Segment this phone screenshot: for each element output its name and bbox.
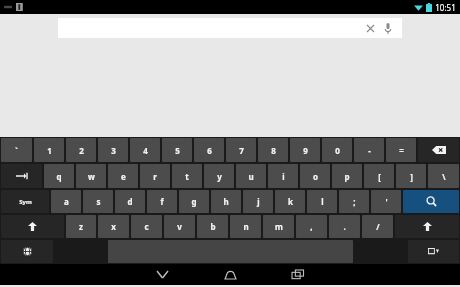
button[interactable]: j <box>243 190 273 213</box>
button[interactable]: \ <box>428 164 459 188</box>
staticText: - <box>368 145 371 156</box>
button[interactable]: h <box>211 190 241 213</box>
staticText: ] <box>410 171 413 182</box>
staticText: . <box>343 221 346 232</box>
button[interactable]: w <box>76 164 106 188</box>
button[interactable]: a <box>51 190 81 213</box>
staticText: r <box>153 171 157 182</box>
button[interactable]: g <box>179 190 209 213</box>
staticText: c <box>144 221 149 232</box>
button[interactable]: 6 <box>194 138 224 162</box>
button[interactable]: Clear search <box>362 20 378 36</box>
staticText: 7 <box>239 145 244 156</box>
button[interactable]: , <box>296 215 327 238</box>
button[interactable]: e <box>108 164 138 188</box>
staticText: 1 <box>47 145 52 156</box>
button[interactable]: - <box>354 138 384 162</box>
staticText: t <box>185 171 189 182</box>
staticText: s <box>96 196 101 207</box>
button[interactable]: u <box>236 164 266 188</box>
staticText: b <box>210 221 216 232</box>
button[interactable]: z <box>66 215 96 238</box>
staticText: 0 <box>335 145 340 156</box>
button[interactable]: s <box>83 190 113 213</box>
staticText: e <box>121 171 126 182</box>
staticText: / <box>376 221 380 232</box>
staticText: ` <box>15 145 18 156</box>
button[interactable]: Voice search <box>380 20 396 36</box>
button[interactable]: ] <box>396 164 426 188</box>
button[interactable]: d <box>115 190 145 213</box>
button[interactable]: Shift <box>395 215 459 238</box>
button[interactable]: 9 <box>290 138 320 162</box>
button[interactable]: 1 <box>34 138 64 162</box>
staticText: 5 <box>175 145 180 156</box>
button[interactable]: y <box>204 164 234 188</box>
staticText: n <box>243 221 249 232</box>
staticText: 3 <box>111 145 116 156</box>
button[interactable]: Tab <box>1 164 42 188</box>
staticText: 10:51 <box>435 2 456 13</box>
button[interactable]: i <box>268 164 298 188</box>
button[interactable]: l <box>307 190 337 213</box>
staticText: l <box>321 196 324 207</box>
button[interactable]: n <box>230 215 261 238</box>
staticText: p <box>344 171 350 182</box>
staticText: m <box>275 221 283 232</box>
staticText: q <box>56 171 62 182</box>
button[interactable]: q <box>44 164 74 188</box>
button[interactable]: 2 <box>66 138 96 162</box>
button[interactable]: ; <box>339 190 369 213</box>
staticText: , <box>310 221 313 232</box>
button[interactable]: Sym <box>1 190 49 213</box>
staticText: [ <box>378 171 381 182</box>
button[interactable]: ` <box>1 138 32 162</box>
button[interactable]: Shift <box>1 215 64 238</box>
staticText: f <box>160 196 164 207</box>
button[interactable]: Recent apps <box>274 264 322 285</box>
button[interactable]: [ <box>364 164 394 188</box>
staticText: a <box>64 196 69 207</box>
staticText: ' <box>385 196 388 207</box>
button[interactable]: c <box>131 215 162 238</box>
staticText: w <box>88 171 95 182</box>
staticText: 8 <box>271 145 276 156</box>
button[interactable]: 0 <box>322 138 352 162</box>
button[interactable]: Delete <box>418 138 459 162</box>
button[interactable]: r <box>140 164 170 188</box>
staticText: ; <box>353 196 356 207</box>
button[interactable]: Hide keyboard <box>408 240 459 263</box>
button[interactable]: 4 <box>130 138 160 162</box>
button[interactable]: f <box>147 190 177 213</box>
button[interactable]: k <box>275 190 305 213</box>
button[interactable]: b <box>197 215 228 238</box>
button[interactable]: Change language <box>1 240 53 263</box>
button[interactable]: Home <box>206 264 254 285</box>
button[interactable]: m <box>263 215 294 238</box>
button[interactable]: v <box>164 215 195 238</box>
button[interactable]: 5 <box>162 138 192 162</box>
staticText: h <box>223 196 229 207</box>
button[interactable]: Hide keyboard <box>138 264 186 285</box>
button[interactable]: / <box>362 215 393 238</box>
button[interactable]: x <box>98 215 129 238</box>
button[interactable]: 8 <box>258 138 288 162</box>
button[interactable]: Clear search <box>58 18 402 38</box>
staticText: y <box>217 171 222 182</box>
staticText: i <box>282 171 285 182</box>
staticText: u <box>248 171 254 182</box>
button[interactable]: Search <box>403 190 459 213</box>
button[interactable]: p <box>332 164 362 188</box>
button[interactable]: . <box>329 215 360 238</box>
staticText: x <box>111 221 116 232</box>
staticText: 9 <box>303 145 308 156</box>
button[interactable]: o <box>300 164 330 188</box>
button[interactable]: = <box>386 138 416 162</box>
button[interactable]: 7 <box>226 138 256 162</box>
button[interactable]: t <box>172 164 202 188</box>
staticText: 2 <box>79 145 84 156</box>
staticText: v <box>177 221 182 232</box>
button[interactable]: ' <box>371 190 401 213</box>
button[interactable]: 3 <box>98 138 128 162</box>
